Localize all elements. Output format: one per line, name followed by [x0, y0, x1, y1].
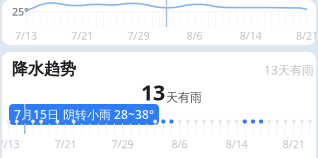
staticText: 8/14: [226, 137, 248, 151]
staticText: 13: [141, 78, 165, 106]
staticText: 8/14: [240, 28, 262, 43]
staticText: 7/13: [15, 28, 37, 43]
staticText: 7/29: [127, 28, 149, 43]
staticText: 7/21: [71, 28, 93, 43]
staticText: 天有雨: [166, 90, 202, 105]
staticText: 8/6: [172, 137, 188, 151]
staticText: 8/6: [187, 28, 203, 43]
staticText: 25°: [12, 4, 29, 19]
staticText: 8/21: [283, 137, 305, 151]
button[interactable]: 降水趋势: [2, 52, 76, 79]
staticText: 降水趋势: [12, 59, 76, 79]
staticText: 7月15日 阴转小雨 28~38°: [14, 106, 154, 122]
button[interactable]: 13天有雨: [2, 52, 58, 70]
staticText: 7/21: [54, 137, 76, 151]
staticText: 13天有雨: [264, 62, 314, 78]
staticText: 7/29: [112, 137, 134, 151]
staticText: 7/13: [0, 137, 19, 151]
staticText: 8/21: [296, 28, 318, 43]
